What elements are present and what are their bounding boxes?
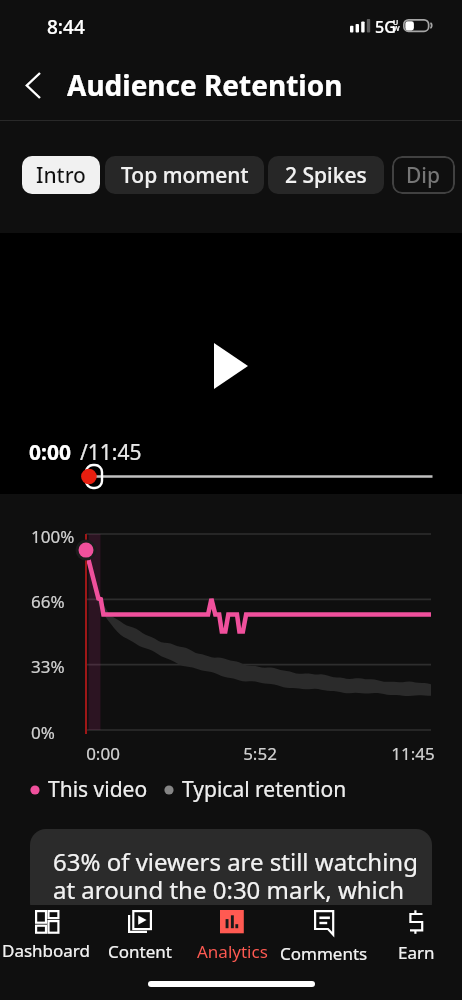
staticText: This video — [48, 775, 148, 804]
staticText: Audience Retention — [67, 66, 343, 104]
staticText: 0:00 — [63, 742, 143, 765]
button[interactable]: Intro — [22, 156, 100, 194]
button[interactable]: Dip — [392, 156, 455, 194]
staticText: 11:45 — [373, 742, 453, 765]
staticText: Intro — [36, 161, 86, 190]
staticText: 33% — [31, 655, 65, 678]
button[interactable]: Top moment — [105, 156, 264, 194]
staticText: Comments — [280, 942, 368, 965]
button[interactable]: Comments — [278, 905, 370, 969]
staticText: 5:52 — [220, 742, 300, 765]
button[interactable]: Analytics — [186, 905, 278, 969]
staticText: U — [393, 18, 399, 28]
staticText: 2 Spikes — [285, 161, 367, 190]
staticText: 66% — [31, 590, 65, 613]
staticText: 63% of viewers are still watching at aro… — [53, 845, 423, 906]
button[interactable]: 63% of viewers are still watching at aro… — [30, 829, 432, 919]
staticText: 0:00 — [29, 438, 71, 467]
button[interactable]: Back — [11, 63, 55, 107]
staticText: Dip — [406, 161, 441, 190]
staticText: 0% — [31, 721, 55, 744]
staticText: Earn — [398, 941, 435, 964]
staticText: 100% — [31, 525, 75, 548]
staticText: Content — [108, 940, 172, 963]
button[interactable]: 2 Spikes — [268, 156, 384, 194]
button[interactable]: Earn — [370, 905, 462, 969]
staticText: Top moment — [121, 161, 249, 190]
staticText: Analytics — [197, 940, 268, 963]
staticText: Dashboard — [2, 939, 91, 962]
staticText: W — [393, 24, 400, 34]
button[interactable]: Content — [93, 905, 186, 969]
staticText: 8:44 — [47, 14, 85, 40]
staticText: Typical retention — [182, 775, 347, 804]
staticText: 5G — [375, 16, 396, 38]
button[interactable]: Dashboard — [0, 905, 93, 969]
staticText: /11:45 — [80, 438, 142, 467]
